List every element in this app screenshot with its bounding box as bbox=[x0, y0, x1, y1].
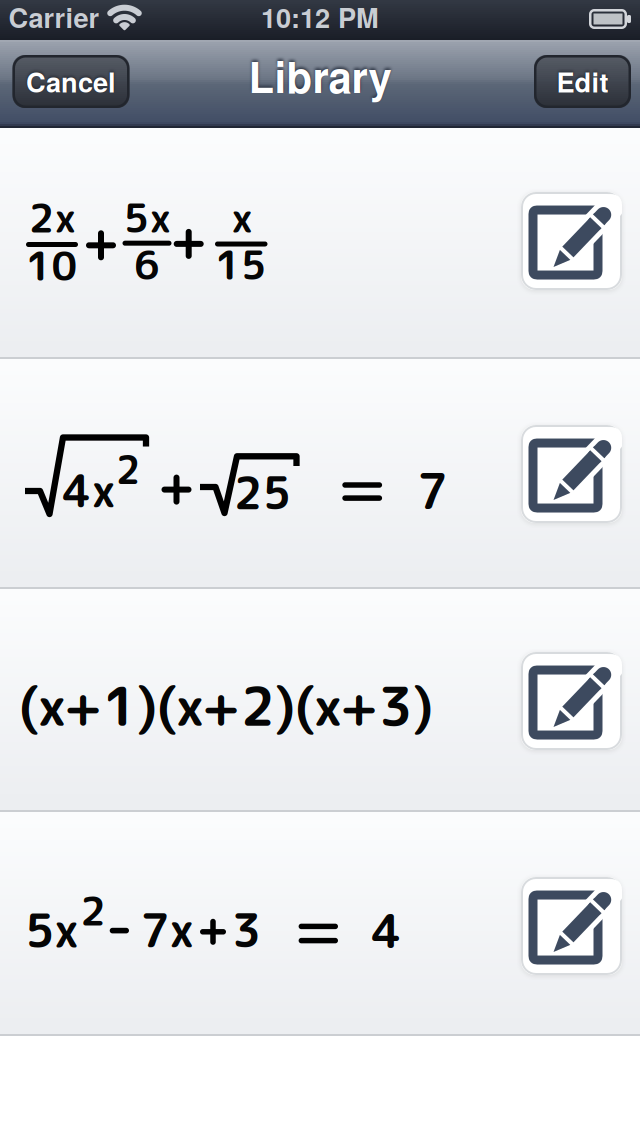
staticText: Cancel bbox=[26, 62, 116, 101]
staticText: Carrier bbox=[8, 0, 99, 36]
staticText: Edit bbox=[556, 62, 608, 101]
staticText: 2 bbox=[80, 883, 106, 938]
staticText: x bbox=[231, 190, 252, 245]
button[interactable] bbox=[521, 192, 622, 290]
staticText: 10:12 PM bbox=[261, 0, 379, 36]
staticText: 6 bbox=[134, 237, 160, 292]
button[interactable] bbox=[521, 877, 622, 975]
staticText: 15 bbox=[215, 237, 267, 292]
staticText: 25 bbox=[233, 461, 291, 524]
staticText: Library bbox=[248, 46, 391, 106]
staticText: 2 bbox=[115, 442, 140, 496]
staticText: 5x bbox=[123, 190, 170, 245]
button[interactable] bbox=[521, 652, 622, 750]
button[interactable]: 2x bbox=[0, 128, 640, 359]
button[interactable]: Edit bbox=[534, 55, 631, 108]
button[interactable]: 4x bbox=[0, 359, 640, 589]
staticText: 5x bbox=[25, 898, 78, 962]
staticText: 10 bbox=[25, 238, 77, 293]
button[interactable] bbox=[521, 425, 622, 523]
staticText: (x+1)(x+2)(x+3) bbox=[18, 668, 433, 743]
staticText: 7 bbox=[417, 457, 448, 524]
staticText: 4x bbox=[62, 459, 114, 521]
staticText: 2x bbox=[28, 190, 75, 245]
staticText: 7x bbox=[140, 898, 193, 962]
button[interactable]: Cancel bbox=[12, 55, 129, 108]
button[interactable]: 5x bbox=[0, 812, 640, 1036]
staticText: 4 bbox=[372, 898, 402, 963]
button[interactable]: (x+1)(x+2)(x+3) bbox=[0, 589, 640, 812]
staticText: 3 bbox=[232, 898, 261, 962]
